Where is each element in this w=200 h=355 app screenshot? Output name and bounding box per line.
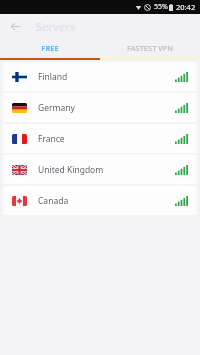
staticText: Servers bbox=[36, 19, 76, 34]
staticText: Finland bbox=[38, 71, 68, 83]
staticText: 20:42 bbox=[176, 2, 196, 12]
button[interactable]: FASTEST VPN bbox=[100, 38, 200, 58]
button[interactable]: Germany bbox=[3, 93, 197, 122]
button[interactable]: Finland bbox=[3, 62, 197, 91]
staticText: FASTEST VPN bbox=[127, 43, 173, 53]
staticText: 55% bbox=[154, 2, 168, 12]
button[interactable]: Canada bbox=[3, 186, 197, 215]
staticText: France bbox=[38, 133, 65, 145]
button[interactable]: France bbox=[3, 124, 197, 153]
staticText: FREE bbox=[41, 43, 59, 53]
button[interactable]: United Kingdom bbox=[3, 155, 197, 184]
staticText: United Kingdom bbox=[38, 164, 104, 176]
button[interactable]: Back bbox=[6, 17, 24, 35]
staticText: Canada bbox=[38, 195, 69, 207]
staticText: Germany bbox=[38, 102, 75, 114]
button[interactable]: FREE bbox=[0, 38, 100, 58]
